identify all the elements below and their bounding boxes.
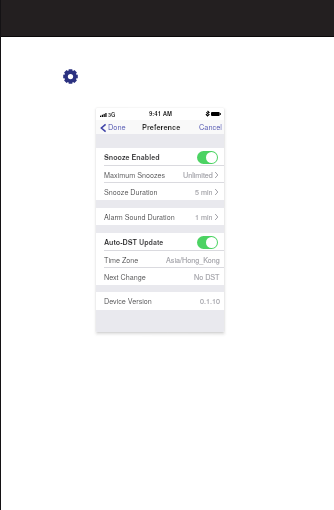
staticText: Done [108,122,126,133]
button[interactable]: Toggle [197,236,218,249]
button[interactable]: Device Version [96,292,224,310]
staticText: Next Change [104,272,146,282]
staticText: Alarm Sound Duration [104,212,175,222]
button[interactable]: Done [96,122,126,133]
staticText: Snooze Duration [104,187,158,197]
button[interactable]: Snooze Duration [96,183,224,200]
button[interactable]: Auto-DST Update [96,233,224,251]
button[interactable]: Cancel [199,122,224,133]
button[interactable]: Time Zone [96,251,224,268]
staticText: Preference [142,122,181,133]
staticText: Asia/Hong_Kong [166,255,220,265]
staticText: Time Zone [104,255,139,265]
staticText: No DST [194,272,220,282]
staticText: Unlimited [183,170,213,180]
button[interactable]: Snooze Enabled [96,148,224,166]
button[interactable]: Settings [63,69,78,84]
button[interactable]: Next Change [96,268,224,285]
staticText: Maximum Snoozes [104,170,166,180]
staticText: Snooze Enabled [104,152,160,162]
staticText: 5 min [195,187,213,197]
button[interactable]: Alarm Sound Duration [96,208,224,225]
staticText: 9:41 AM [149,109,173,118]
staticText: Device Version [104,296,152,306]
button[interactable]: Toggle [197,151,218,164]
button[interactable]: Maximum Snoozes [96,166,224,183]
staticText: 0.1.10 [200,296,220,306]
staticText: 1 min [195,212,213,222]
staticText: 3G [108,111,116,119]
staticText: Auto-DST Update [104,237,164,247]
